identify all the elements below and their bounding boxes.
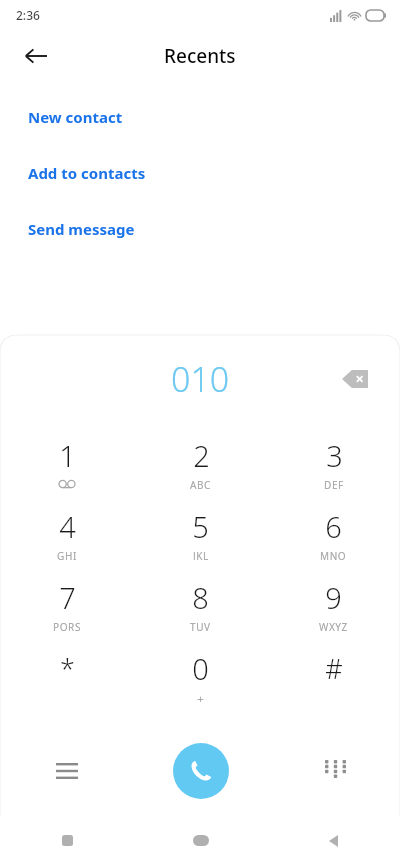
- button[interactable]: #: [267, 640, 400, 711]
- button[interactable]: 1: [0, 427, 134, 498]
- button[interactable]: Call: [173, 743, 229, 799]
- staticText: 2: [193, 436, 210, 475]
- staticText: JKL: [193, 549, 209, 560]
- staticText: Recents: [164, 43, 236, 69]
- button[interactable]: Send message: [0, 216, 400, 242]
- button[interactable]: Recents: [0, 815, 134, 866]
- staticText: 6: [325, 507, 342, 546]
- staticText: *: [60, 650, 75, 687]
- button[interactable]: 9: [267, 569, 400, 640]
- staticText: Add to contacts: [28, 163, 146, 183]
- button[interactable]: Home: [134, 815, 267, 866]
- button[interactable]: 3: [267, 427, 400, 498]
- button[interactable]: 7: [0, 569, 134, 640]
- staticText: 2:36: [16, 7, 40, 23]
- staticText: WXYZ: [319, 620, 348, 631]
- button[interactable]: 5: [134, 498, 267, 569]
- button[interactable]: Back: [14, 34, 58, 78]
- button[interactable]: Add to contacts: [0, 160, 400, 186]
- button[interactable]: 8: [134, 569, 267, 640]
- staticText: 1: [59, 436, 76, 475]
- staticText: Send message: [28, 219, 135, 239]
- staticText: PQRS: [53, 620, 81, 631]
- staticText: 5: [192, 507, 209, 546]
- button[interactable]: Keypad: [267, 727, 400, 815]
- button[interactable]: *: [0, 640, 134, 711]
- staticText: 4: [59, 507, 76, 546]
- staticText: MNO: [320, 549, 347, 560]
- staticText: +: [197, 691, 205, 702]
- button[interactable]: 6: [267, 498, 400, 569]
- staticText: ABC: [190, 478, 212, 489]
- staticText: DEF: [324, 478, 344, 489]
- staticText: 3: [326, 436, 343, 475]
- staticText: 0: [192, 649, 209, 688]
- button[interactable]: Call log: [0, 727, 134, 815]
- staticText: 010: [171, 356, 230, 402]
- button[interactable]: New contact: [0, 104, 400, 130]
- button[interactable]: 2: [134, 427, 267, 498]
- button[interactable]: 0: [134, 640, 267, 711]
- staticText: 7: [59, 578, 76, 617]
- staticText: 9: [325, 578, 342, 617]
- button[interactable]: Backspace: [334, 358, 376, 400]
- button[interactable]: Back: [267, 815, 400, 866]
- staticText: New contact: [28, 107, 123, 127]
- staticText: GHI: [57, 549, 77, 560]
- staticText: TUV: [190, 620, 211, 631]
- button[interactable]: 4: [0, 498, 134, 569]
- staticText: #: [325, 650, 343, 687]
- staticText: 8: [192, 578, 209, 617]
